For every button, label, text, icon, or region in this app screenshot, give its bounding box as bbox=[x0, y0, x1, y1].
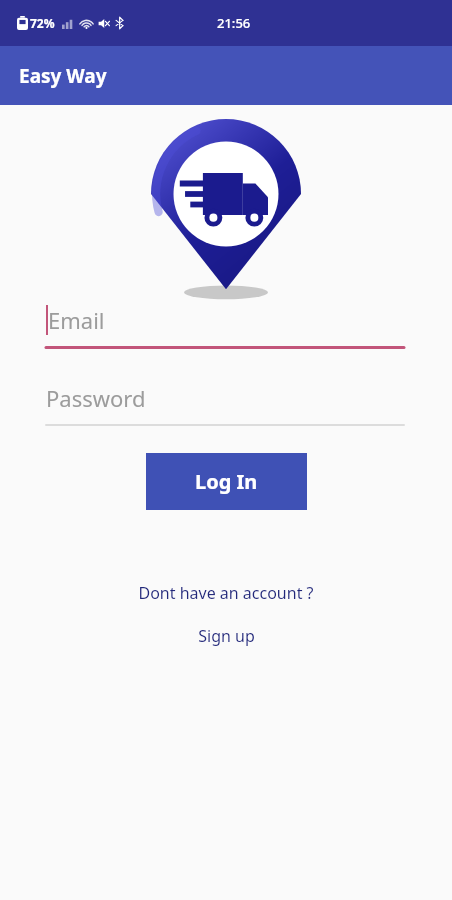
button[interactable]: Log In bbox=[146, 453, 307, 510]
staticText: Easy Way bbox=[19, 63, 107, 89]
staticText: 21:56 bbox=[217, 14, 251, 32]
button[interactable]: Email bbox=[0, 303, 452, 349]
staticText: Log In bbox=[195, 468, 258, 495]
staticText: Password bbox=[46, 383, 146, 413]
staticText: Sign up bbox=[198, 625, 255, 647]
staticText: 72% bbox=[30, 15, 55, 31]
button[interactable]: Dont have an account ? bbox=[0, 580, 452, 606]
staticText: Dont have an account ? bbox=[138, 582, 314, 604]
button[interactable]: Sign up bbox=[0, 623, 452, 649]
button[interactable]: Password bbox=[0, 381, 452, 426]
staticText: Email bbox=[48, 305, 105, 335]
other: Easy Way delivery logo bbox=[151, 119, 301, 303]
